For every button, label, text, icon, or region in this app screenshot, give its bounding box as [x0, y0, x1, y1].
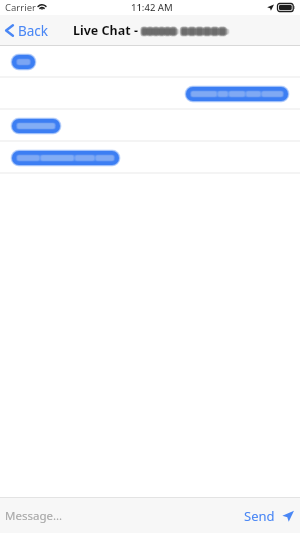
staticText: 11:42 AM [131, 1, 173, 14]
button[interactable] [0, 46, 300, 78]
button[interactable]: Send [238, 497, 300, 533]
staticText: Message... [5, 508, 63, 524]
staticText: Carrier [5, 1, 36, 14]
button[interactable] [0, 78, 300, 110]
button[interactable] [0, 142, 300, 174]
staticText: Live Chat - [73, 22, 142, 39]
button[interactable]: Back [0, 15, 53, 46]
staticText: Back [18, 22, 49, 40]
staticText: Send [244, 507, 275, 525]
button[interactable] [0, 110, 300, 142]
